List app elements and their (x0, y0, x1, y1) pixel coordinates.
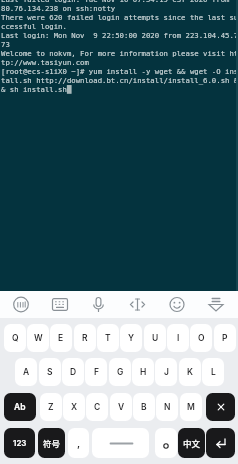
button[interactable]: V (110, 393, 132, 421)
button[interactable]: Y (120, 324, 142, 352)
button[interactable]: K (179, 358, 201, 386)
button[interactable]: W (27, 324, 49, 352)
button[interactable] (198, 291, 238, 318)
staticText: 123 (13, 438, 27, 448)
button[interactable]: U (144, 324, 166, 352)
staticText: 中文 (183, 437, 201, 449)
staticText: C (94, 402, 101, 412)
staticText: Z (48, 402, 54, 412)
button[interactable] (0, 291, 39, 318)
staticText: 符号 (43, 437, 61, 449)
staticText: O (198, 333, 205, 343)
button[interactable]: J (155, 358, 177, 386)
button[interactable]: 中文 (178, 428, 205, 458)
staticText: E (58, 333, 64, 343)
staticText: , (77, 437, 81, 449)
staticText: Last failed login: Tue Nov 10 07:54:19 C… (1, 0, 238, 94)
button[interactable] (206, 393, 235, 421)
staticText: Q (12, 333, 19, 343)
staticText: M (187, 402, 195, 412)
button[interactable]: Ab (4, 393, 36, 421)
staticText: G (117, 367, 124, 377)
button[interactable] (92, 428, 149, 458)
button[interactable] (155, 428, 177, 458)
button[interactable]: 123 (4, 428, 35, 458)
staticText: P (222, 333, 228, 343)
button[interactable] (118, 291, 158, 318)
button[interactable]: P (214, 324, 236, 352)
button[interactable]: T (97, 324, 119, 352)
button[interactable] (78, 291, 118, 318)
staticText: T (105, 333, 111, 343)
button[interactable]: B (133, 393, 155, 421)
staticText: J (164, 367, 169, 377)
button[interactable]: L (202, 358, 224, 386)
staticText: I (177, 333, 180, 343)
button[interactable]: N (156, 393, 178, 421)
staticText: R (82, 333, 88, 343)
staticText: W (34, 333, 43, 343)
button[interactable]: H (132, 358, 154, 386)
button[interactable]: Last failed login: Tue Nov 10 07:54:19 C… (0, 0, 238, 291)
staticText: F (94, 367, 99, 377)
button[interactable] (158, 291, 198, 318)
staticText: Y (128, 333, 135, 343)
staticText: X (71, 402, 78, 412)
staticText: S (47, 367, 53, 377)
staticText: U (152, 333, 159, 343)
button[interactable]: O (190, 324, 212, 352)
staticText: A (23, 367, 30, 377)
button[interactable]: 符号 (38, 428, 65, 458)
button[interactable]: , (68, 428, 89, 458)
staticText: D (70, 367, 77, 377)
staticText: L (211, 367, 216, 377)
button[interactable]: G (109, 358, 131, 386)
button[interactable]: M (180, 393, 202, 421)
button[interactable]: F (85, 358, 107, 386)
staticText: N (164, 402, 171, 412)
button[interactable]: R (74, 324, 96, 352)
staticText: B (141, 402, 147, 412)
button[interactable]: Q (4, 324, 26, 352)
staticText: K (187, 367, 193, 377)
button[interactable]: Z (40, 393, 62, 421)
staticText: V (118, 402, 125, 412)
button[interactable] (206, 428, 235, 458)
button[interactable] (39, 291, 78, 318)
button[interactable]: E (50, 324, 72, 352)
button[interactable]: A (15, 358, 37, 386)
staticText: Ab (14, 402, 26, 412)
button[interactable]: I (167, 324, 189, 352)
button[interactable]: X (63, 393, 85, 421)
staticText: H (140, 367, 147, 377)
button[interactable]: D (62, 358, 84, 386)
button[interactable]: C (86, 393, 108, 421)
button[interactable]: S (39, 358, 61, 386)
